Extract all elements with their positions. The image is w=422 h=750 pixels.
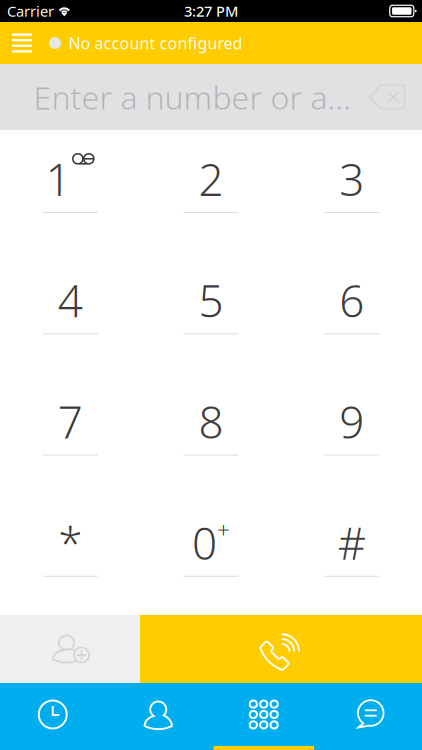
button[interactable]: Keypad [211, 683, 316, 750]
button[interactable]: Contacts [105, 683, 211, 750]
staticText: 4 [58, 271, 83, 329]
staticText: 3 [339, 150, 364, 208]
staticText: 9 [339, 392, 364, 451]
staticText: 3:27 PM [184, 1, 238, 21]
staticText: 6 [339, 271, 364, 329]
button[interactable]: 3 [281, 130, 422, 251]
button[interactable]: 9 [281, 372, 422, 494]
button[interactable]: Delete [358, 73, 416, 121]
staticText: Enter a number or a… [33, 76, 350, 118]
staticText: * [58, 513, 82, 572]
button[interactable]: Menu [0, 22, 49, 64]
staticText: 1 [46, 150, 71, 208]
staticText: 7 [58, 392, 83, 451]
staticText: # [338, 513, 366, 572]
button[interactable]: 1 [0, 130, 141, 251]
staticText: Carrier [7, 1, 54, 21]
button[interactable]: Call [140, 615, 422, 683]
button[interactable]: 5 [141, 251, 281, 372]
button[interactable]: * [0, 494, 141, 615]
button[interactable]: 8 [141, 372, 281, 494]
staticText: + [217, 514, 230, 545]
button[interactable]: # [281, 494, 422, 615]
button[interactable]: 4 [0, 251, 141, 372]
staticText: 8 [198, 392, 223, 451]
staticText: 5 [198, 271, 223, 329]
staticText: 2 [198, 150, 223, 208]
staticText: No account configured [68, 32, 242, 54]
button[interactable]: 6 [281, 251, 422, 372]
button[interactable]: 2 [141, 130, 281, 251]
button[interactable]: Recents [0, 683, 105, 750]
button[interactable]: 0 [141, 494, 281, 615]
button[interactable]: 7 [0, 372, 141, 494]
button[interactable]: No account configured [49, 22, 252, 64]
button[interactable]: Add contact [0, 615, 140, 683]
staticText: 0 [192, 513, 217, 572]
button[interactable]: Messages [316, 683, 422, 750]
